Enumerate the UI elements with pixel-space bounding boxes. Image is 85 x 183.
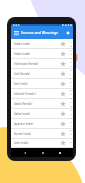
- button[interactable]: Irish (female): [11, 69, 73, 79]
- staticText: Q: [70, 104, 72, 108]
- staticText: F: [70, 60, 72, 64]
- staticText: D: [70, 52, 72, 56]
- staticText: Italian (male): [14, 112, 58, 116]
- staticText: Indonesian (female): [14, 62, 58, 66]
- button[interactable]: Korean (male): [11, 129, 73, 139]
- staticText: Indian (male): [14, 42, 58, 46]
- staticText: Sunnes and Blessings (Free): [21, 30, 63, 35]
- button[interactable]: Favorite: [58, 69, 67, 78]
- staticText: I: [70, 72, 71, 76]
- button[interactable]: Indian (male): [11, 39, 73, 49]
- button[interactable]: Favorite: [58, 139, 67, 147]
- button[interactable]: Icelandic (female): [11, 89, 73, 99]
- staticText: Korean (male): [14, 132, 58, 136]
- button[interactable]: Latin (male): [11, 139, 73, 148]
- staticText: Indian (male): [14, 52, 58, 56]
- staticText: H: [70, 68, 72, 72]
- button[interactable]: Favorite: [58, 109, 67, 118]
- staticText: C: [70, 48, 72, 52]
- staticText: Icelandic (female): [14, 92, 58, 96]
- button[interactable]: Menu: [11, 26, 21, 39]
- button[interactable]: Indonesian (female): [11, 59, 73, 69]
- button[interactable]: Recents: [55, 148, 64, 157]
- button[interactable]: Back: [20, 148, 29, 157]
- staticText: A: [70, 40, 72, 44]
- staticText: P: [70, 100, 72, 104]
- staticText: G: [70, 64, 72, 68]
- staticText: Italian (female): [14, 102, 58, 106]
- button[interactable]: Indian (male): [11, 49, 73, 59]
- staticText: Y: [70, 136, 72, 140]
- staticText: M: [69, 88, 72, 92]
- button[interactable]: Irish (male): [11, 79, 73, 89]
- staticText: W: [69, 128, 72, 132]
- button[interactable]: Italian (female): [11, 99, 73, 109]
- staticText: R: [70, 108, 72, 112]
- staticText: N: [70, 92, 72, 96]
- button[interactable]: Favorite: [58, 129, 67, 138]
- button[interactable]: Home: [38, 148, 47, 157]
- staticText: S: [70, 112, 72, 116]
- button[interactable]: Favorite: [58, 99, 67, 108]
- staticText: Irish (male): [14, 82, 58, 86]
- button[interactable]: Favorite: [58, 79, 67, 88]
- staticText: O: [70, 96, 72, 100]
- staticText: V: [70, 124, 72, 128]
- staticText: E: [70, 56, 72, 60]
- button[interactable]: Japanese (male): [11, 119, 73, 129]
- button[interactable]: Favorite: [58, 59, 67, 68]
- staticText: B: [70, 44, 72, 48]
- staticText: Z: [70, 140, 72, 144]
- staticText: Japanese (male): [14, 122, 58, 126]
- button[interactable]: Favorite: [58, 39, 67, 48]
- button[interactable]: Favorite: [58, 89, 67, 98]
- staticText: X: [70, 132, 72, 136]
- staticText: T: [70, 116, 72, 120]
- button[interactable]: More options: [63, 26, 73, 39]
- staticText: J: [70, 76, 71, 80]
- staticText: U: [70, 120, 72, 124]
- button[interactable]: Favorite: [58, 49, 67, 58]
- button[interactable]: Italian (male): [11, 109, 73, 119]
- staticText: K: [70, 80, 72, 84]
- staticText: Latin (male): [14, 141, 58, 145]
- button[interactable]: Favorite: [58, 119, 67, 128]
- staticText: Irish (female): [14, 72, 58, 76]
- staticText: L: [70, 84, 72, 88]
